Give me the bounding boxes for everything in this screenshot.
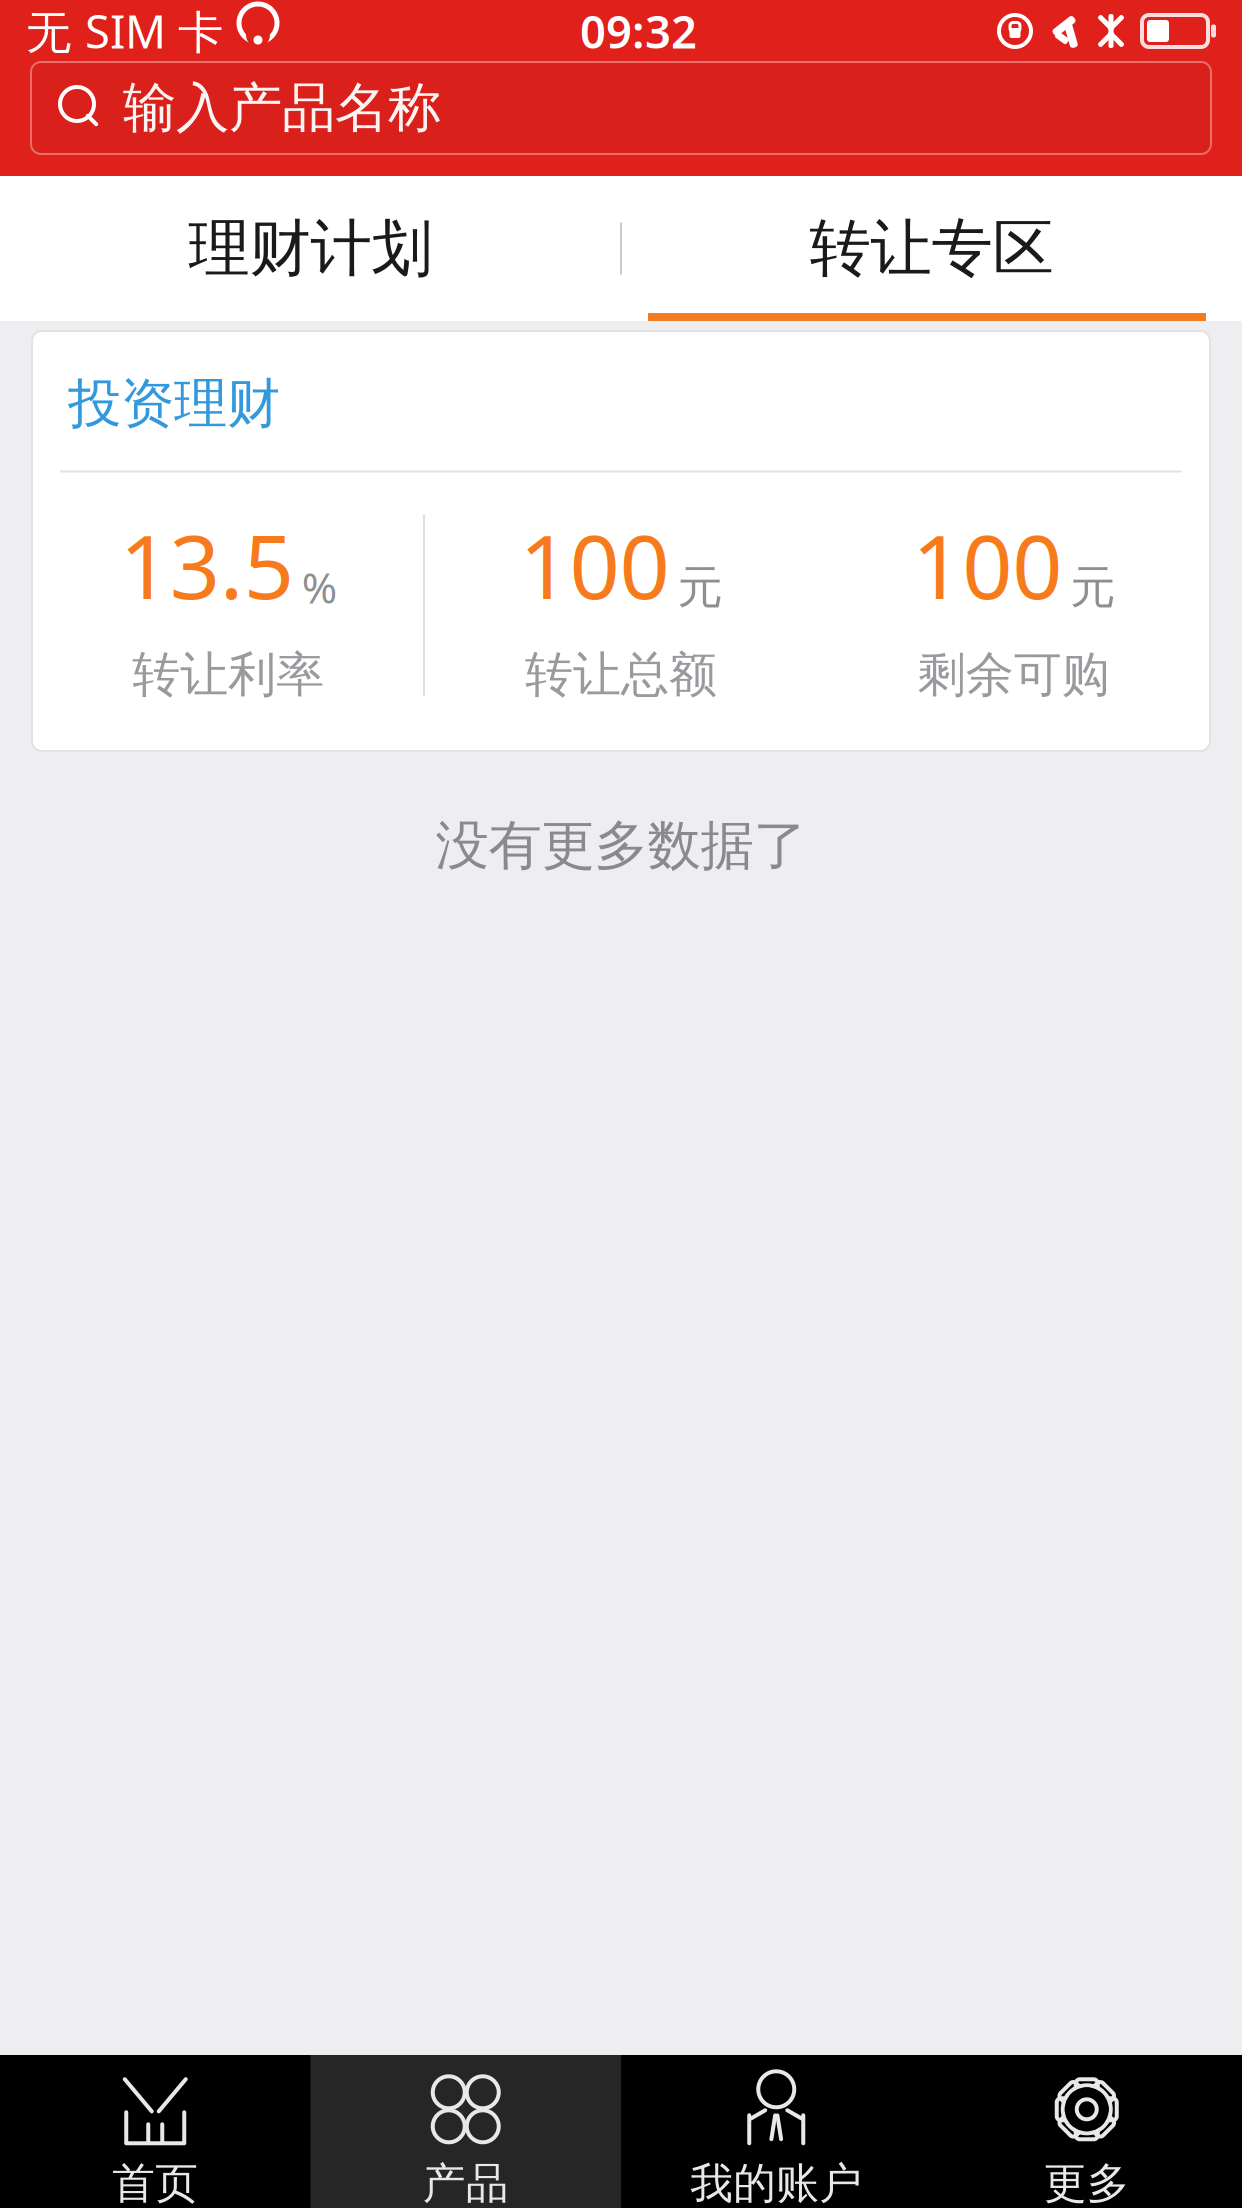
button[interactable]: 搜索 输入产品名称 bbox=[31, 62, 1211, 154]
staticText: 转让总额 bbox=[525, 645, 717, 704]
staticText: 我的账户 bbox=[690, 2157, 862, 2208]
staticText: 100 bbox=[912, 506, 1062, 623]
staticText: 产品 bbox=[423, 2157, 509, 2208]
button[interactable]: 我的账户 bbox=[621, 2055, 931, 2208]
staticText: 输入产品名称 bbox=[123, 75, 441, 141]
staticText: 元 bbox=[677, 560, 722, 615]
staticText: % bbox=[302, 559, 337, 615]
staticText: 转让利率 bbox=[132, 645, 324, 704]
staticText: 100 bbox=[519, 506, 669, 623]
staticText: 元 bbox=[1070, 560, 1115, 615]
staticText: 更多 bbox=[1044, 2157, 1130, 2208]
staticText: 剩余可购 bbox=[918, 645, 1110, 704]
staticText: 投资理财 bbox=[68, 371, 280, 436]
staticText: 理财计划 bbox=[188, 211, 432, 286]
staticText: 首页 bbox=[112, 2157, 198, 2208]
button[interactable]: 投资理财 转让利率 13.5% bbox=[32, 331, 1210, 751]
button[interactable]: 转让专区 bbox=[621, 176, 1242, 321]
button[interactable]: 更多 bbox=[931, 2055, 1242, 2208]
staticText: 没有更多数据了 bbox=[435, 813, 806, 878]
button[interactable]: 首页 bbox=[0, 2055, 310, 2208]
staticText: 转让专区 bbox=[809, 211, 1053, 286]
staticText: 13.5 bbox=[120, 506, 294, 623]
staticText: 09:32 bbox=[580, 1, 697, 61]
button[interactable]: 产品 bbox=[310, 2055, 621, 2208]
button[interactable]: 理财计划 bbox=[0, 176, 621, 321]
staticText: 无 SIM 卡 bbox=[26, 1, 223, 61]
